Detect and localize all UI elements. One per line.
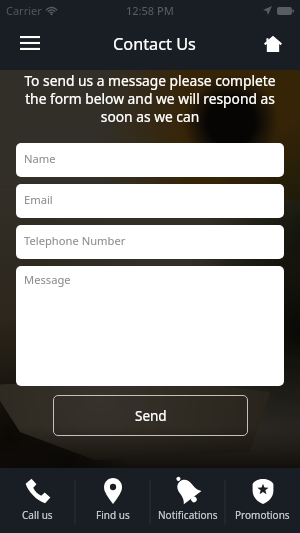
- staticText: Promotions: [235, 508, 290, 522]
- button[interactable]: Message: [16, 266, 284, 386]
- staticText: Find us: [96, 508, 130, 522]
- button[interactable]: Menu: [8, 21, 52, 65]
- button[interactable]: Telephone Number: [16, 225, 284, 259]
- staticText: Send: [135, 407, 167, 425]
- button[interactable]: Email: [16, 184, 284, 218]
- staticText: Name: [24, 151, 56, 166]
- staticText: Message: [24, 272, 71, 287]
- button[interactable]: Notifications: [150, 468, 225, 533]
- button[interactable]: Home: [251, 22, 295, 66]
- staticText: Call us: [22, 508, 53, 522]
- staticText: Carrier: [6, 3, 42, 18]
- staticText: 12:58 PM: [126, 3, 174, 18]
- button[interactable]: Call us: [0, 468, 75, 533]
- staticText: To send us a message please complete the…: [18, 71, 282, 126]
- button[interactable]: Name: [16, 143, 284, 177]
- staticText: Contact Us: [113, 33, 196, 55]
- button[interactable]: Find us: [75, 468, 150, 533]
- button[interactable]: Send: [53, 395, 248, 436]
- button[interactable]: Promotions: [225, 468, 300, 533]
- staticText: Notifications: [158, 508, 218, 522]
- staticText: Email: [24, 192, 53, 207]
- staticText: Telephone Number: [24, 233, 126, 248]
